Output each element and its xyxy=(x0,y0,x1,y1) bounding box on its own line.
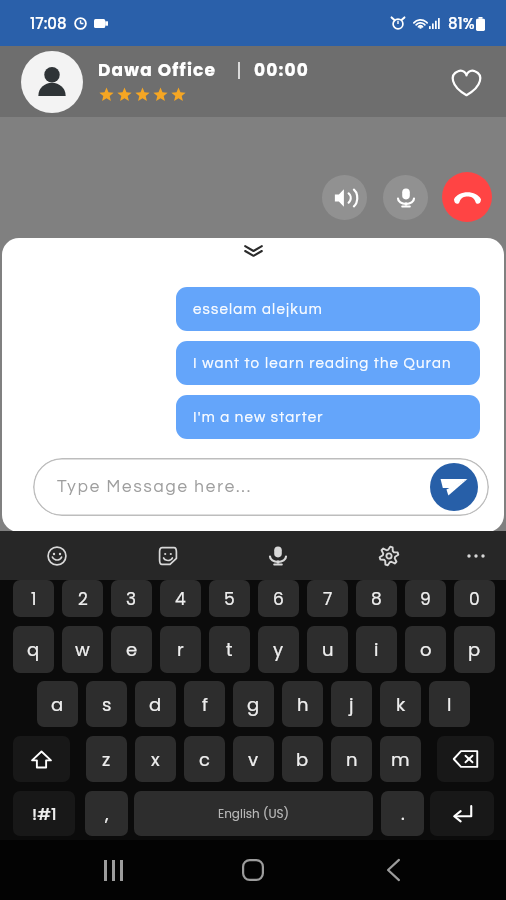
button[interactable]: g xyxy=(233,681,274,727)
button[interactable]: Enter xyxy=(430,791,494,836)
button[interactable]: o xyxy=(405,626,446,673)
staticText: 8 xyxy=(371,587,382,611)
staticText: w xyxy=(75,637,90,662)
button[interactable]: More options xyxy=(456,536,496,576)
staticText: I'm a new starter xyxy=(193,410,324,425)
staticText: v xyxy=(248,747,259,772)
button[interactable]: esselam alejkum xyxy=(176,287,480,331)
button[interactable]: End call xyxy=(442,172,492,222)
button[interactable]: x xyxy=(135,736,176,782)
button[interactable]: b xyxy=(282,736,323,782)
button[interactable]: f xyxy=(184,681,225,727)
button[interactable]: 9 xyxy=(405,580,446,617)
staticText: 00:00 xyxy=(254,58,310,82)
staticText: 81% xyxy=(448,13,475,34)
button[interactable]: k xyxy=(380,681,421,727)
staticText: z xyxy=(102,747,111,772)
staticText: g xyxy=(247,692,260,717)
button[interactable]: n xyxy=(331,736,372,782)
staticText: b xyxy=(296,747,309,772)
staticText: a xyxy=(51,692,64,717)
button[interactable]: l xyxy=(429,681,470,727)
button[interactable]: 8 xyxy=(356,580,397,617)
staticText: esselam alejkum xyxy=(193,302,323,317)
button[interactable]: r xyxy=(160,626,201,673)
staticText: Dawa Office xyxy=(98,58,217,82)
button[interactable]: s xyxy=(86,681,127,727)
button[interactable]: Contact photo xyxy=(21,51,83,113)
button[interactable]: d xyxy=(135,681,176,727)
button[interactable]: 6 xyxy=(258,580,299,617)
button[interactable]: , xyxy=(85,791,128,836)
button[interactable]: i xyxy=(356,626,397,673)
button[interactable]: Mute microphone xyxy=(383,175,428,220)
staticText: p xyxy=(468,637,481,662)
staticText: k xyxy=(396,692,406,717)
staticText: 6 xyxy=(273,587,284,611)
button[interactable]: Symbols xyxy=(13,791,75,836)
button[interactable]: z xyxy=(86,736,127,782)
staticText: u xyxy=(322,637,334,662)
button[interactable]: 2 xyxy=(62,580,103,617)
staticText: j xyxy=(349,692,354,717)
staticText: h xyxy=(297,692,309,717)
button[interactable]: 4 xyxy=(160,580,201,617)
button[interactable]: I'm a new starter xyxy=(176,395,480,439)
button[interactable]: Recents xyxy=(86,843,140,897)
staticText: , xyxy=(105,801,109,826)
button[interactable]: Shift xyxy=(13,736,70,782)
button[interactable]: . xyxy=(381,791,424,836)
button[interactable]: Collapse chat xyxy=(231,241,275,261)
button[interactable]: Stickers xyxy=(148,536,188,576)
button[interactable]: Speaker xyxy=(322,175,367,220)
button[interactable]: j xyxy=(331,681,372,727)
staticText: I want to learn reading the Quran xyxy=(193,356,452,371)
staticText: e xyxy=(126,637,138,662)
button[interactable]: t xyxy=(209,626,250,673)
button[interactable]: 1 xyxy=(13,580,54,617)
button[interactable]: c xyxy=(184,736,225,782)
button[interactable]: Voice input xyxy=(258,536,298,576)
staticText: . xyxy=(401,801,405,826)
button[interactable]: 3 xyxy=(111,580,152,617)
button[interactable]: q xyxy=(13,626,54,673)
button[interactable]: Back xyxy=(366,843,420,897)
button[interactable]: Backspace xyxy=(437,736,494,782)
button[interactable]: Space xyxy=(134,791,373,836)
button[interactable]: e xyxy=(111,626,152,673)
staticText: f xyxy=(202,692,208,717)
button[interactable]: Send xyxy=(430,463,478,511)
button[interactable]: Home xyxy=(226,843,280,897)
button[interactable]: u xyxy=(307,626,348,673)
staticText: d xyxy=(149,692,162,717)
button[interactable]: h xyxy=(282,681,323,727)
staticText: c xyxy=(199,747,210,772)
button[interactable]: v xyxy=(233,736,274,782)
staticText: 3 xyxy=(126,587,137,611)
staticText: o xyxy=(420,637,432,662)
staticText: 0 xyxy=(469,587,480,611)
staticText: English (US) xyxy=(218,805,290,822)
button[interactable]: 0 xyxy=(454,580,495,617)
staticText: x xyxy=(151,747,160,772)
button[interactable]: p xyxy=(454,626,495,673)
button[interactable]: Emoji xyxy=(37,536,77,576)
staticText: 9 xyxy=(420,587,431,611)
staticText: 5 xyxy=(224,587,235,611)
button[interactable]: 5 xyxy=(209,580,250,617)
button[interactable]: I want to learn reading the Quran xyxy=(176,341,480,385)
button[interactable]: Favourite xyxy=(444,60,488,104)
button[interactable]: Type Message here... xyxy=(33,458,489,516)
staticText: i xyxy=(374,637,379,662)
staticText: !#1 xyxy=(32,803,57,825)
staticText: s xyxy=(102,692,112,717)
button[interactable]: w xyxy=(62,626,103,673)
staticText: 2 xyxy=(78,587,88,611)
staticText: t xyxy=(226,637,233,662)
staticText: 7 xyxy=(323,587,333,611)
button[interactable]: 7 xyxy=(307,580,348,617)
button[interactable]: Keyboard settings xyxy=(369,536,409,576)
button[interactable]: m xyxy=(380,736,421,782)
button[interactable]: y xyxy=(258,626,299,673)
button[interactable]: a xyxy=(37,681,78,727)
